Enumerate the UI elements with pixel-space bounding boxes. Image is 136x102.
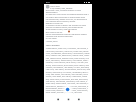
staticText: A presto, Marco. [46, 40, 59, 42]
button[interactable]: Recents [76, 96, 82, 102]
staticText: Costa, Anna Barbieri, Simone Rizzo, Laur… [46, 52, 90, 54]
staticText: Primo Coletti, Vanna Bertani, Ugo Sestin… [46, 89, 89, 91]
button[interactable]: Home [65, 96, 71, 102]
staticText: Cenni d'intenti [46, 44, 60, 47]
staticText: Paolo Greco, Elena Ricci, Marco Villa, C… [46, 50, 89, 52]
staticText: Ennio Ruggiero, Delia Farina, Aldo Guerr… [46, 87, 89, 89]
staticText: Io credo che il nostro lavoro stia andan… [46, 13, 89, 15]
staticText: Dante Olivieri, Rosa Gatti, Bruno Pini, … [46, 91, 83, 93]
staticText: Vi ringrazio tutti per il tempo e per l'… [46, 24, 87, 26]
staticText: Grasso, Teresa Mancini, Bruno Fabbri, Ro… [46, 64, 90, 66]
staticText: Pellegrini, Noemi Carbone, Dario Sartori… [46, 61, 89, 63]
staticText: con rinnovata fiducia reciproca, sempre. [46, 20, 76, 22]
staticText: dedicato al progetto comune, ogni singol… [46, 26, 84, 28]
staticText: Rossetti, Gina Ferrara, Ciro Amato, Lea … [46, 71, 89, 73]
staticText: Palumbo, Vera Esposito, Ugo Rinaldi, Lia… [46, 66, 90, 68]
staticText: a me, progetto, team, direzione [50, 7, 73, 9]
staticText: Un caro saluto. [46, 37, 58, 39]
staticText: Riva, Fulvio Donati, Irma Silvestri, Enz… [46, 78, 89, 80]
staticText: Serra, Valentina Neri, Roberto Sala, Mar… [46, 54, 90, 56]
staticText: Resto a disposizione per qualsiasi chiar… [46, 33, 87, 35]
staticText: 9:41 [46, 1, 50, 4]
staticText: Buona sera a tutti, condivido volentieri… [46, 9, 82, 11]
staticText: Marco Rossi [50, 5, 60, 7]
staticText: Grazie davvero di tutto, siete stati spe… [46, 28, 78, 30]
staticText: Andrea Bianchi, Giulia Conti, Luca Ferra… [46, 47, 89, 49]
staticText: Alba Martini, Tullio Rinaldi, Vito Ferra… [46, 80, 88, 82]
staticText: che valga la pena continuare su questa s… [46, 15, 86, 17]
staticText: chiedermi nelle prossime settimane. [46, 35, 74, 37]
staticText: aggiornamento. [46, 11, 59, 13]
staticText: Greco, Ilaria Bruno, Stefano Marini, Car… [46, 59, 89, 61]
staticText: nei prossimi mesi, insieme a tutti voi, … [46, 18, 88, 20]
staticText: Sergio Testa, Mirella Grandi, Tito Mazza… [46, 82, 89, 84]
staticText: Santoro, Piero Bellini, Rino Marini, Nad… [46, 75, 88, 77]
staticText: Pace, Federica Monti, Gabriele Longo, Si… [46, 57, 90, 59]
button[interactable]: Back [55, 96, 61, 102]
staticText: Ringrazio di cuore tutti. [46, 22, 64, 24]
staticText: Vitale, Olga Pagano, Dino Ferretti, Gaia… [46, 73, 89, 75]
staticText: Nina Costa, Aldo Marino, Rita Sorrentino… [46, 68, 91, 70]
